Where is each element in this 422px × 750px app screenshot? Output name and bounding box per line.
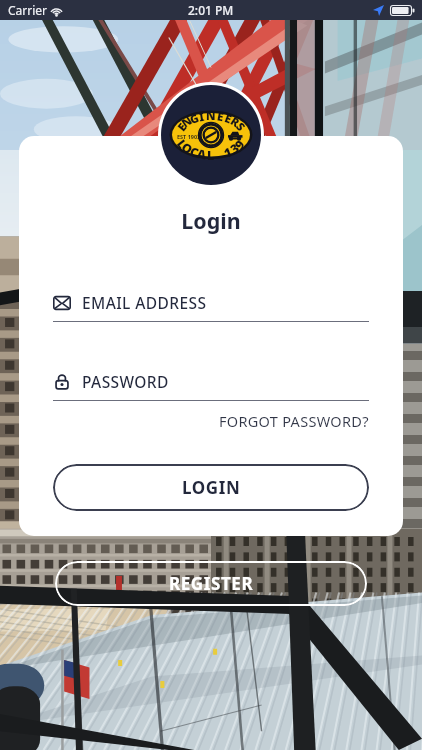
staticText: 9 — [231, 136, 249, 153]
staticText: 2:01 PM — [188, 2, 234, 18]
staticText: A — [196, 145, 208, 164]
staticText: Carrier — [8, 2, 48, 18]
button[interactable]: FORGOT PASSWORD? — [219, 411, 369, 431]
staticText: Login — [19, 206, 403, 235]
button[interactable]: LOGIN — [53, 464, 369, 511]
staticText: N — [206, 108, 216, 124]
staticText — [216, 146, 223, 163]
staticText: L — [207, 147, 215, 164]
staticText: E — [222, 110, 234, 128]
staticText: G — [187, 110, 201, 128]
staticText: O — [178, 139, 196, 158]
staticText: C — [187, 143, 202, 162]
staticText: E — [174, 119, 191, 135]
staticText: 1 — [221, 143, 235, 162]
staticText: E — [216, 108, 225, 125]
staticText: S — [232, 119, 249, 135]
staticText: REGISTER — [169, 572, 254, 595]
staticText: R — [227, 113, 243, 131]
staticText: LOGIN — [182, 476, 241, 499]
staticText: EST 1902 — [177, 133, 201, 140]
staticText: 3 — [227, 139, 243, 158]
staticText: PASSWORD — [82, 371, 169, 392]
staticText: L — [173, 136, 191, 153]
staticText: I — [198, 109, 206, 125]
staticText: EMAIL ADDRESS — [82, 292, 207, 313]
button[interactable]: EMAIL ADDRESS — [53, 292, 369, 322]
button[interactable]: PASSWORD — [53, 371, 369, 401]
staticText: N — [178, 113, 196, 131]
other: Location — [373, 5, 384, 16]
button[interactable]: REGISTER — [55, 561, 367, 606]
